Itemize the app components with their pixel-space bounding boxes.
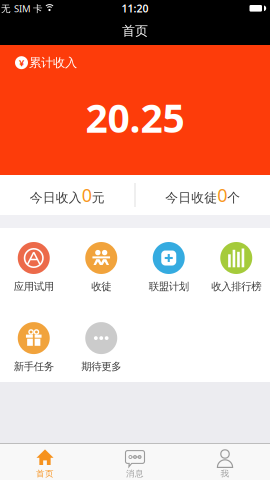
- button[interactable]: 消息: [90, 444, 180, 480]
- staticText: 首页: [122, 23, 148, 39]
- staticText: 联盟计划: [149, 280, 189, 293]
- staticText: 消息: [126, 468, 144, 479]
- staticText: 收入排行榜: [211, 280, 261, 293]
- button[interactable]: 首页: [0, 444, 90, 480]
- staticText: 新手任务: [14, 360, 54, 373]
- staticText: 0: [217, 183, 227, 207]
- staticText: 期待更多: [81, 360, 121, 373]
- button[interactable]: 应用试用: [0, 242, 67, 293]
- staticText: 今日收入: [30, 190, 82, 206]
- button[interactable]: 今日收入: [0, 175, 134, 215]
- staticText: 个: [227, 190, 240, 206]
- button[interactable]: 收徒: [67, 242, 135, 293]
- staticText: 11:20: [121, 1, 148, 16]
- staticText: 累计收入: [29, 55, 77, 70]
- staticText: 0: [82, 183, 92, 207]
- staticText: 无 SIM 卡: [1, 2, 43, 15]
- button[interactable]: 我: [180, 444, 270, 480]
- staticText: 元: [92, 190, 105, 206]
- staticText: 今日收徒: [165, 190, 217, 206]
- staticText: 首页: [36, 468, 54, 479]
- staticText: 收徒: [91, 280, 111, 293]
- staticText: 20.25: [85, 91, 184, 144]
- staticText: ¥: [19, 56, 24, 69]
- button[interactable]: 期待更多: [67, 322, 135, 373]
- button[interactable]: 新手任务: [0, 322, 67, 373]
- staticText: 我: [220, 468, 229, 479]
- staticText: 应用试用: [14, 280, 54, 293]
- button[interactable]: 今日收徒: [135, 175, 270, 215]
- button[interactable]: 联盟计划: [135, 242, 202, 293]
- button[interactable]: 收入排行榜: [202, 242, 270, 293]
